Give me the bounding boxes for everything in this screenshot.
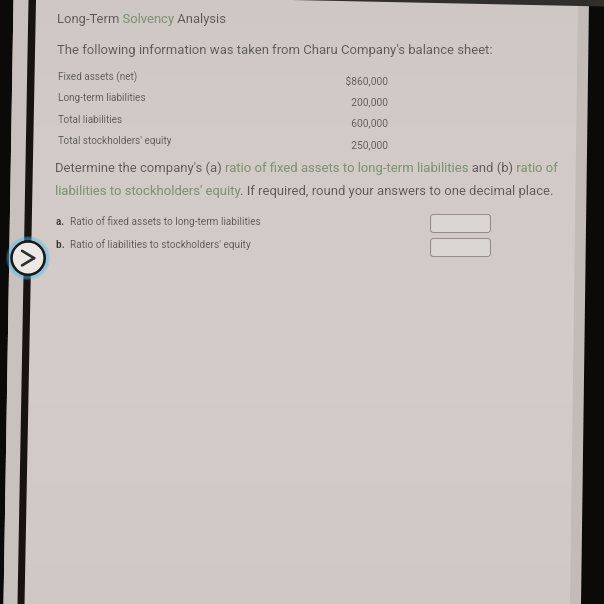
button[interactable] — [430, 238, 491, 257]
staticText: Fixed assets (net) — [58, 71, 138, 83]
staticText: Ratio of liabilities to stockholders' eq… — [70, 239, 251, 251]
staticText: $860,000 — [288, 75, 388, 87]
staticText: 600,000 — [288, 117, 388, 129]
staticText: Ratio of fixed assets to long-term liabi… — [70, 216, 261, 228]
staticText: b. — [56, 239, 65, 251]
staticText: Long-Term Solvency Analysis — [57, 11, 226, 26]
staticText: Total liabilities — [58, 114, 123, 126]
button[interactable]: Next question — [1, 231, 54, 284]
staticText: Long-term liabilities — [58, 92, 146, 104]
staticText: 250,000 — [288, 139, 388, 151]
staticText: Total stockholders' equity — [58, 135, 172, 147]
button[interactable] — [430, 214, 491, 233]
staticText: a. — [56, 216, 65, 228]
staticText: Determine the company's (a) ratio of fix… — [55, 160, 571, 198]
staticText: The following information was taken from… — [57, 42, 493, 57]
staticText: 200,000 — [288, 96, 388, 108]
